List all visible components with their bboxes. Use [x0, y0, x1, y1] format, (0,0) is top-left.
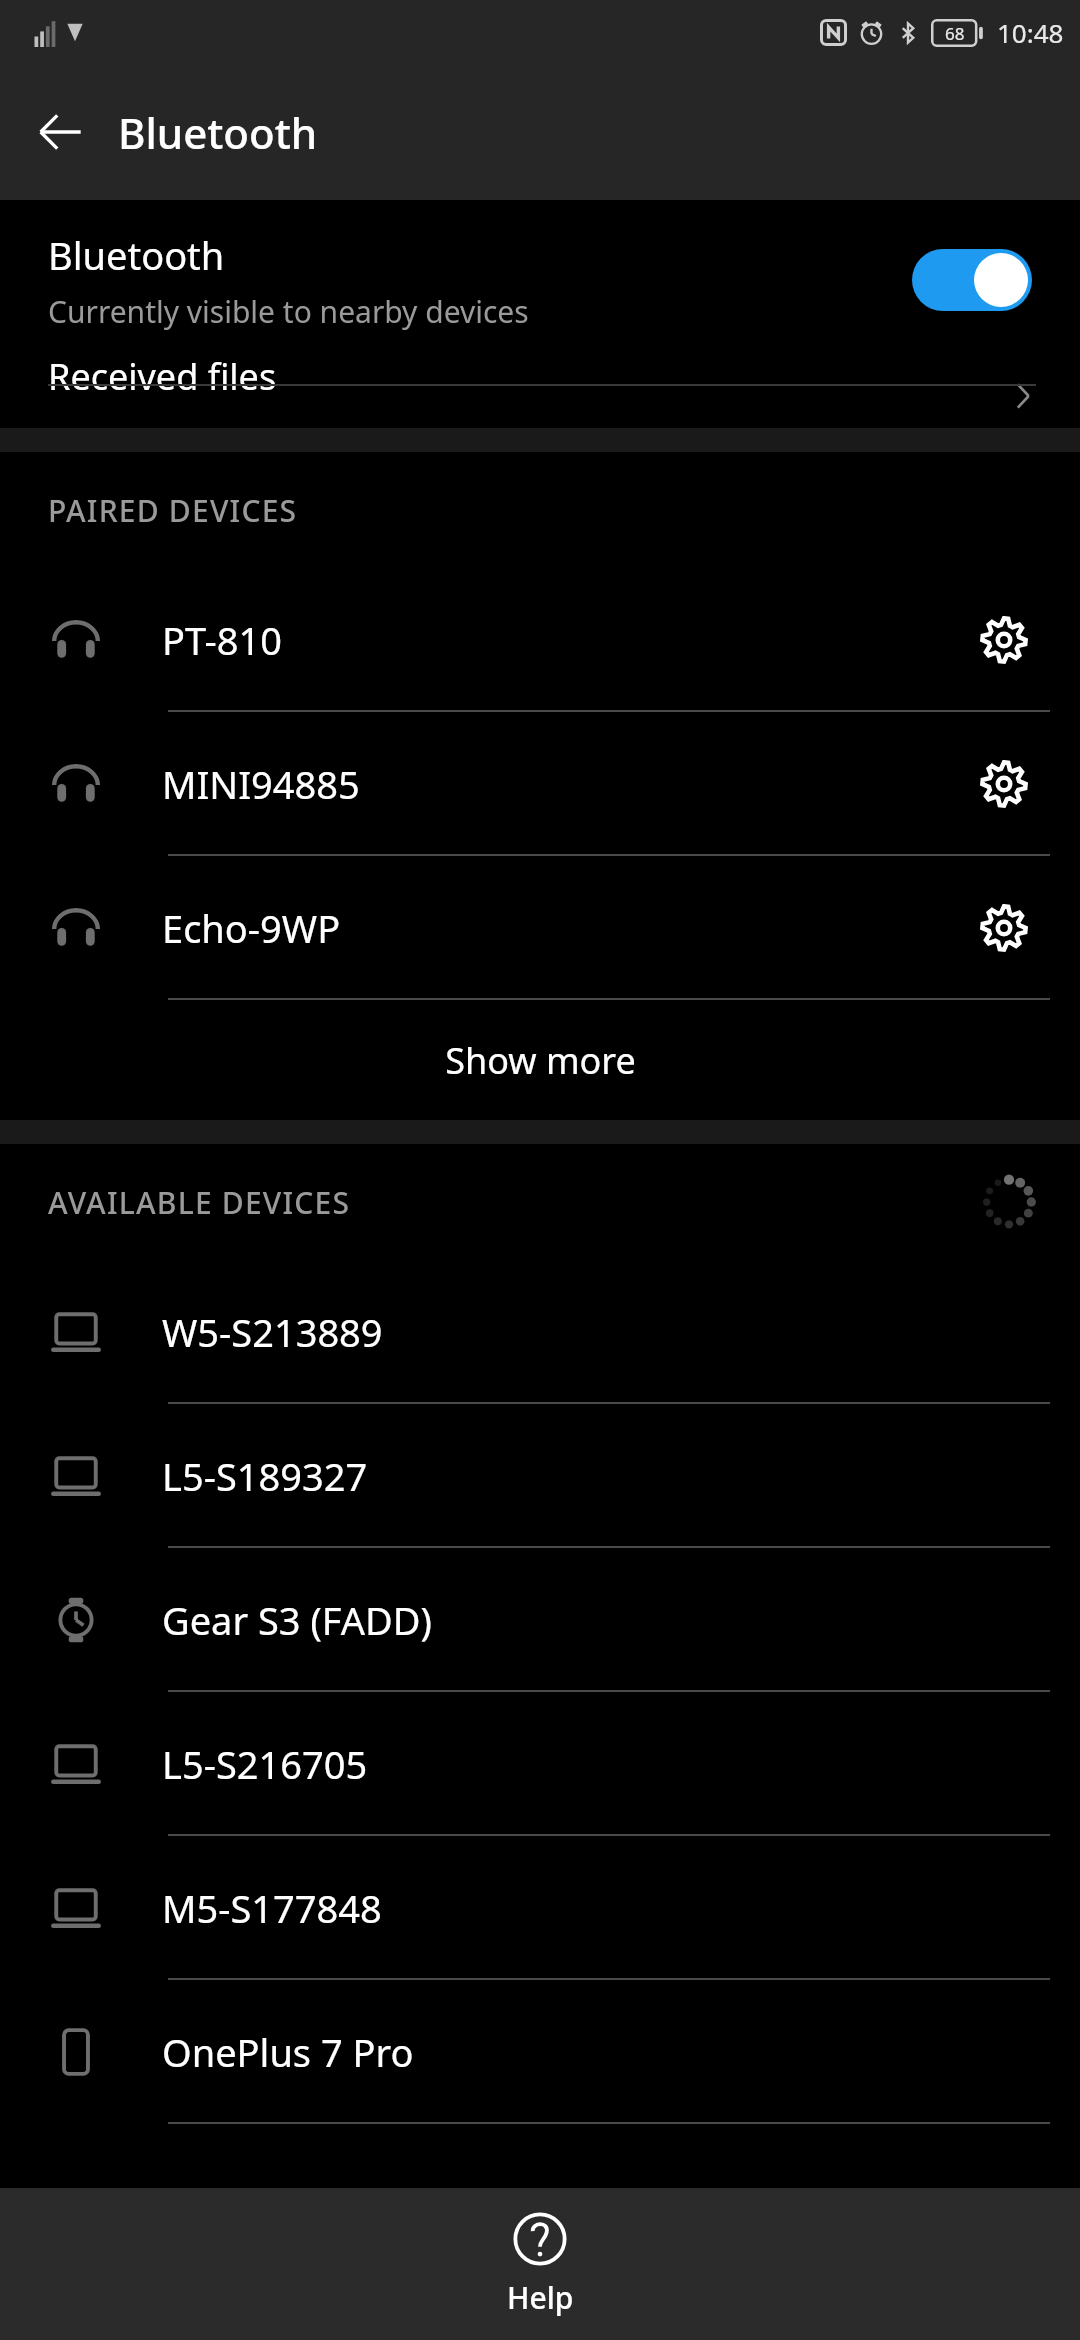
staticText: W5-S213889 [162, 1306, 1040, 1358]
staticText: MINI94885 [162, 758, 968, 810]
button[interactable]: Device settings for Echo-9WP [968, 892, 1040, 964]
button[interactable]: Back [24, 96, 96, 168]
button[interactable]: Echo-9WP [0, 856, 1080, 1000]
button[interactable]: Device settings for PT-810 [968, 604, 1040, 676]
staticText: PT-810 [162, 614, 968, 666]
staticText: OnePlus 7 Pro [162, 2026, 1040, 2078]
staticText: Help [507, 2277, 574, 2318]
button[interactable]: Bluetooth [0, 200, 1080, 360]
staticText: M5-S177848 [162, 1882, 1040, 1934]
button[interactable]: L5-S189327 [0, 1404, 1080, 1548]
staticText: 10:48 [997, 15, 1064, 50]
button[interactable]: Help [0, 2188, 1080, 2340]
button[interactable]: Bluetooth on [912, 249, 1032, 311]
button[interactable]: L5-S216705 [0, 1692, 1080, 1836]
staticText: Received files [48, 352, 277, 401]
staticText: Bluetooth [48, 229, 225, 281]
button[interactable]: Gear S3 (FADD) [0, 1548, 1080, 1692]
button[interactable]: Device settings for MINI94885 [968, 748, 1040, 820]
staticText: Show more [445, 1036, 636, 1085]
staticText: L5-S189327 [162, 1450, 1040, 1502]
button[interactable]: Received files [0, 364, 1080, 428]
button[interactable]: OnePlus 7 Pro [0, 1980, 1080, 2124]
button[interactable]: PT-810 [0, 568, 1080, 712]
staticText: Currently visible to nearby devices [48, 291, 529, 332]
staticText: Echo-9WP [162, 902, 968, 954]
staticText: Bluetooth [118, 104, 318, 161]
staticText: AVAILABLE DEVICES [48, 1182, 351, 1223]
staticText: L5-S216705 [162, 1738, 1040, 1790]
button[interactable]: M5-S177848 [0, 1836, 1080, 1980]
button[interactable]: MINI94885 [0, 712, 1080, 856]
staticText: 68 [945, 22, 965, 45]
button[interactable]: W5-S213889 [0, 1260, 1080, 1404]
staticText: Gear S3 (FADD) [162, 1594, 1040, 1646]
staticText: PAIRED DEVICES [48, 490, 298, 531]
button[interactable]: Show more [0, 1000, 1080, 1120]
